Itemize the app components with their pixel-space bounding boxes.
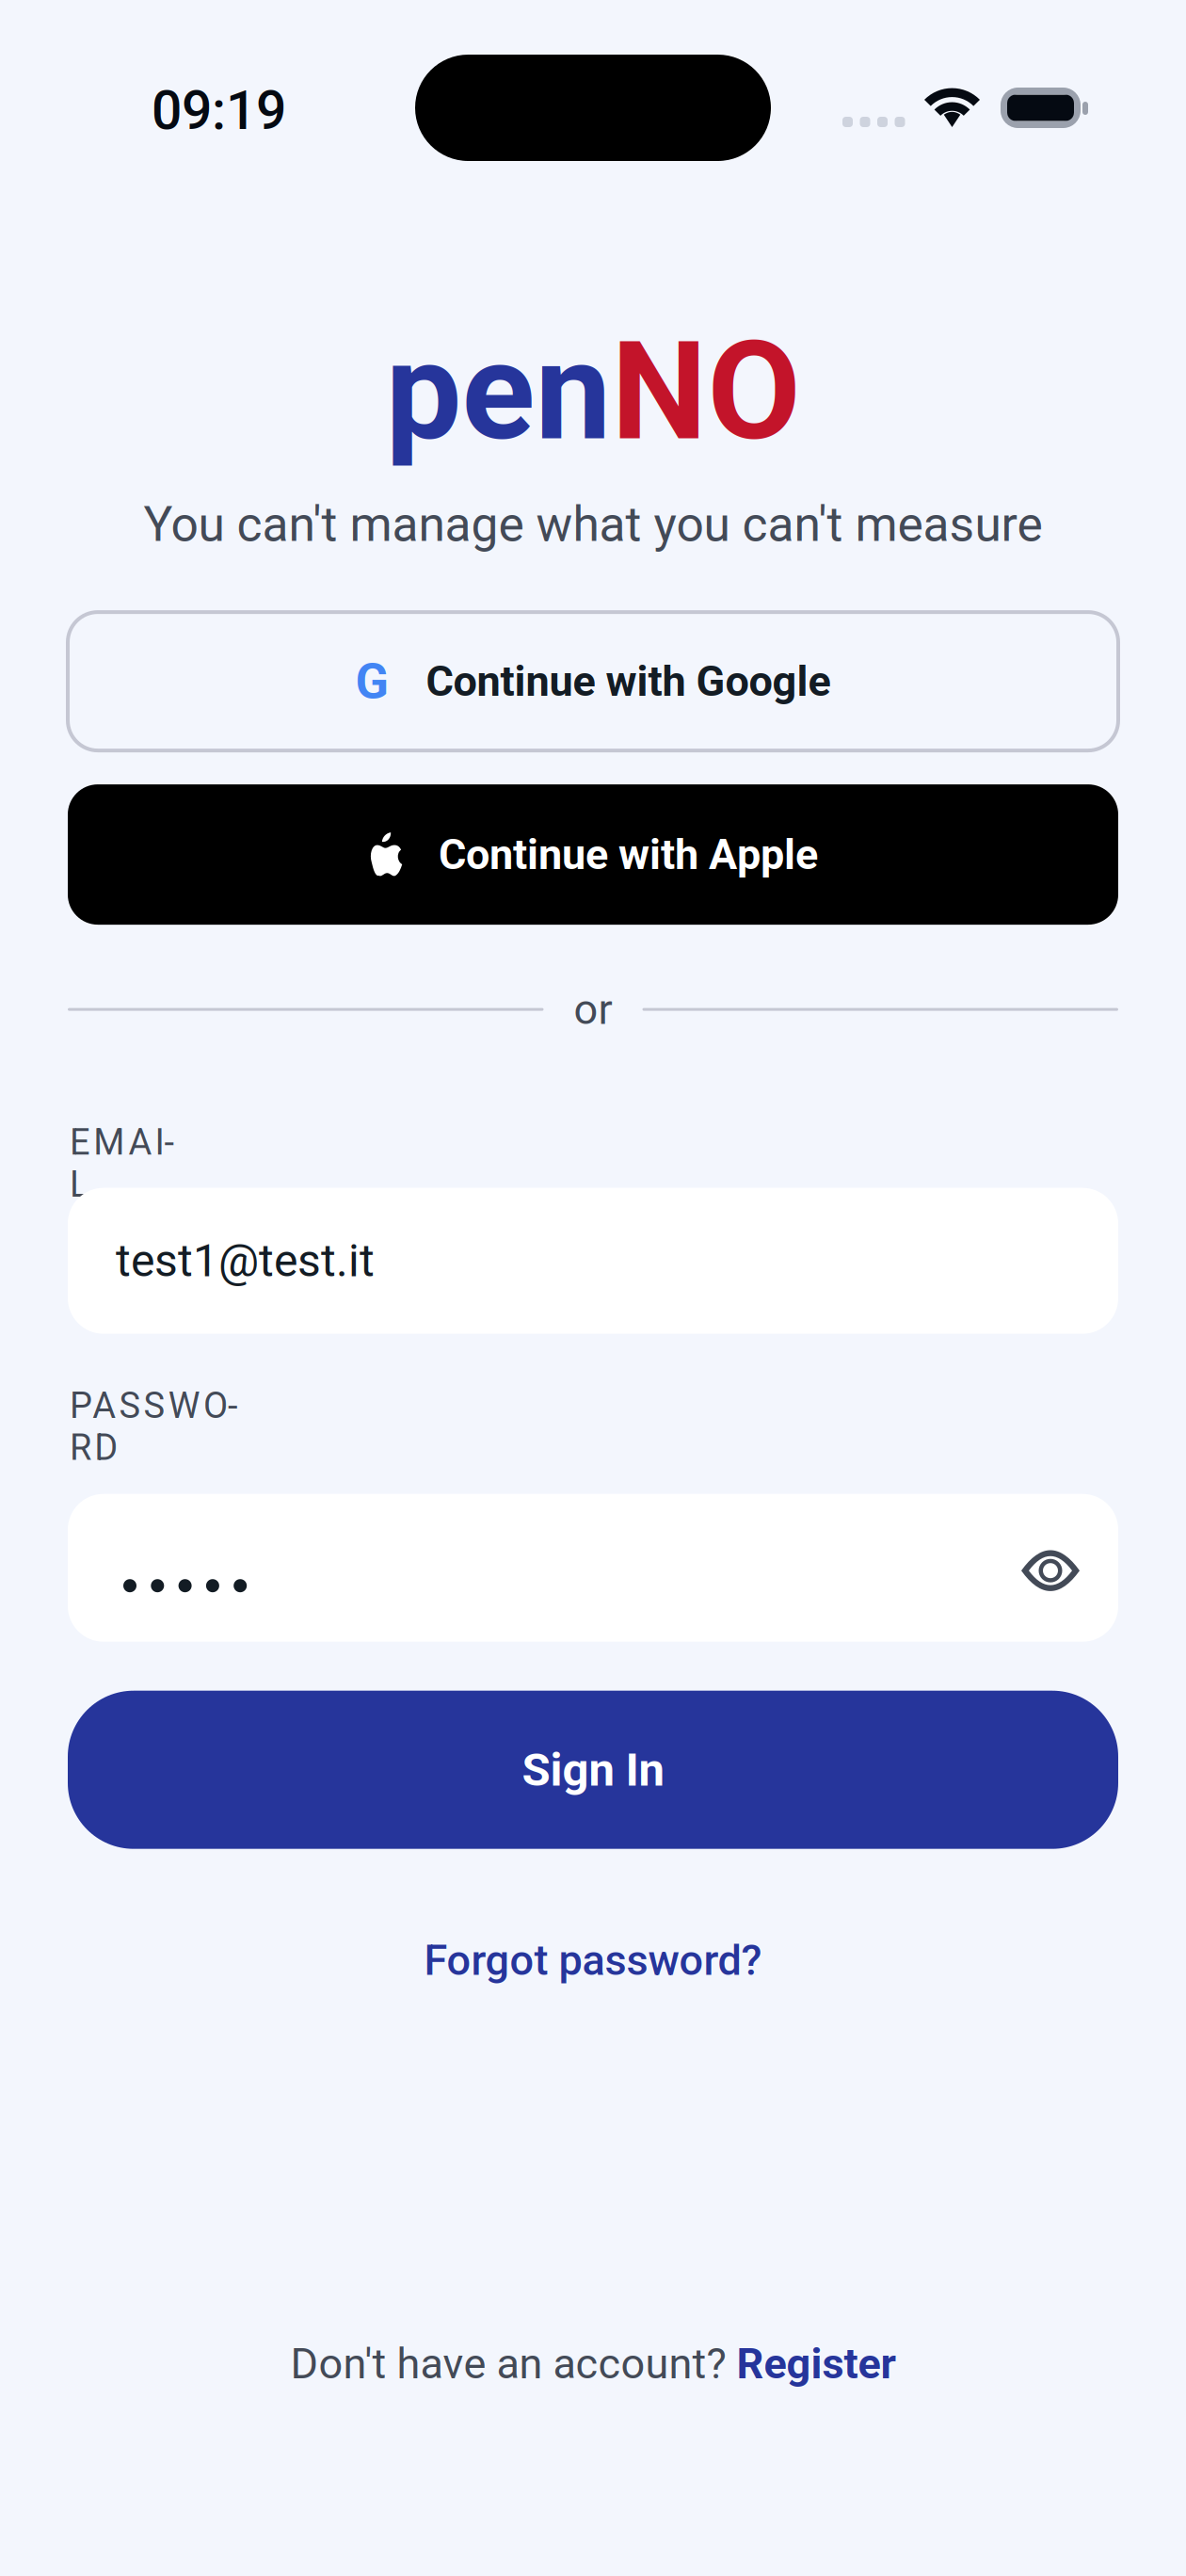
staticText: Sign In xyxy=(522,1743,664,1797)
button[interactable]: Forgot password? xyxy=(411,1922,775,1998)
staticText: G xyxy=(355,653,388,710)
button[interactable]: Show password xyxy=(982,1530,1070,1605)
staticText: PASSWORD xyxy=(70,1385,262,1468)
staticText: Continue with Google xyxy=(426,656,831,706)
staticText: or xyxy=(574,985,612,1034)
staticText: You can't manage what you can't measure xyxy=(144,496,1042,553)
button[interactable]: Sign In xyxy=(0,1691,1186,1849)
staticText: Forgot password? xyxy=(424,1935,762,1985)
button[interactable]: Register xyxy=(737,2339,896,2389)
staticText: test1@test.it xyxy=(116,1234,375,1287)
staticText: Don't have an account? xyxy=(290,2339,737,2389)
staticText: NO xyxy=(611,313,801,472)
staticText: 09:19 xyxy=(152,79,286,142)
staticText: EMAIL xyxy=(70,1121,186,1163)
button[interactable]: Continue with Apple xyxy=(0,784,1186,925)
staticText: Register xyxy=(737,2339,896,2389)
staticText: Continue with Apple xyxy=(439,830,818,879)
button[interactable]: G xyxy=(0,612,1186,750)
staticText: pen xyxy=(385,313,611,472)
